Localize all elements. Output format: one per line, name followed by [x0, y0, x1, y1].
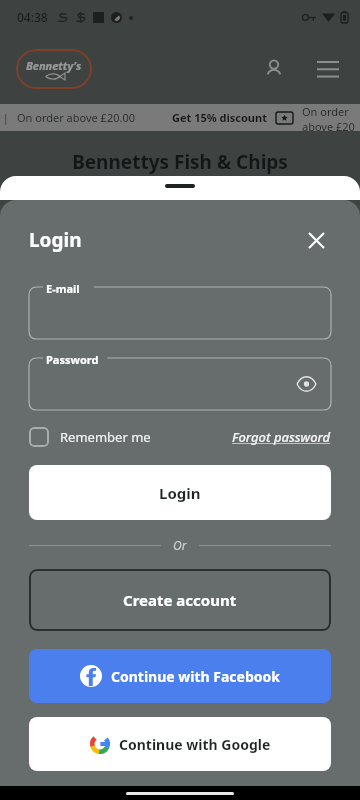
staticText: Create account [123, 590, 237, 610]
button[interactable]: Account [256, 51, 292, 87]
button[interactable]: Menu [310, 51, 346, 87]
staticText: Login [159, 483, 201, 503]
button[interactable]: Close [301, 225, 331, 255]
button[interactable]: Continue with Google [29, 717, 331, 771]
staticText: Bennettys Fish & Chips [0, 149, 360, 175]
staticText: | [3, 111, 9, 125]
staticText: Continue with Google [119, 735, 271, 754]
staticText: Continue with Facebook [111, 667, 280, 686]
staticText: On order above £20 [302, 104, 360, 131]
staticText: Bennetty's [26, 58, 82, 73]
button[interactable]: Continue with Facebook [29, 649, 331, 703]
staticText: 04:38 [17, 9, 48, 25]
staticText: Remember me [60, 428, 151, 446]
button[interactable]: Show password [291, 369, 321, 399]
staticText: Or [173, 537, 187, 553]
button[interactable]: E-mail [29, 287, 331, 339]
staticText: Login [29, 227, 82, 253]
staticText: On order above £20.00 [17, 110, 136, 125]
button[interactable]: Login [29, 465, 331, 520]
button[interactable]: Bennettys home [16, 49, 92, 89]
button[interactable]: Forgot password [232, 428, 331, 446]
staticText: Password [46, 352, 99, 367]
button[interactable]: Create account [29, 569, 331, 631]
button[interactable]: Password [29, 358, 331, 410]
button[interactable]: Remember me [29, 427, 151, 447]
staticText: Get 15% discount [172, 110, 267, 125]
staticText: E-mail [46, 281, 80, 296]
